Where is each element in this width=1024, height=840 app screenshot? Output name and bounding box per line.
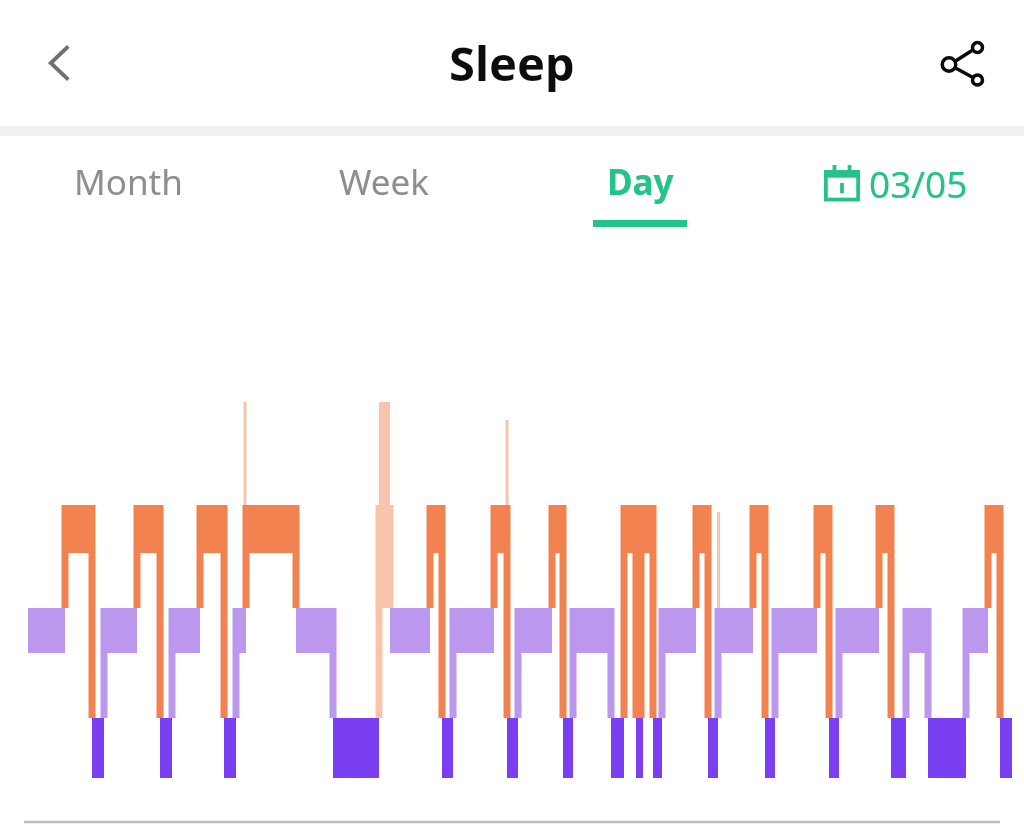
button[interactable]: Month <box>38 154 218 210</box>
button[interactable]: Day <box>550 154 730 231</box>
staticText: Sleep <box>449 31 575 95</box>
button[interactable]: Share <box>924 25 1000 101</box>
button[interactable]: Back <box>22 25 98 101</box>
staticText: Day <box>607 158 674 206</box>
staticText: 03/05 <box>869 158 968 208</box>
staticText: Week <box>339 158 430 206</box>
button[interactable]: Week <box>294 154 474 210</box>
button[interactable]: 03/05 <box>806 154 986 212</box>
staticText: Month <box>74 158 183 206</box>
